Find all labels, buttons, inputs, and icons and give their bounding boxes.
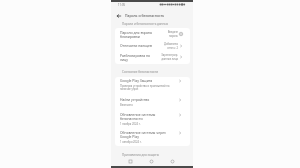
staticText: Зарегистрир. данные лица [161, 53, 178, 61]
staticText: Найти устройство [120, 97, 150, 102]
staticText: 1 ноября 2024 г. [120, 122, 141, 126]
staticText: Разблокировка по лицу [120, 53, 150, 62]
button[interactable]: Google Play Защита [115, 77, 190, 94]
button[interactable]: Назад [114, 11, 123, 20]
button[interactable]: Пароли для экрана блокировки [115, 28, 190, 40]
staticText: Добавлено отпеч.: 2 [164, 42, 178, 50]
staticText: Google Play Защита [120, 78, 153, 83]
button[interactable]: Главный экран [147, 157, 155, 165]
staticText: Отпечатки пальцев [120, 43, 152, 48]
staticText: Приложения для защиты [122, 153, 159, 157]
staticText: Состояние безопасности [122, 70, 159, 74]
button[interactable]: Недавние [126, 157, 134, 165]
staticText: Пароль и безопасность [125, 13, 165, 18]
button[interactable]: Найти устройство [115, 94, 190, 111]
staticText: Введите пароль [167, 30, 178, 38]
staticText: Пароли и безопасность данных [122, 22, 169, 26]
staticText: Включено [120, 103, 133, 107]
button[interactable]: Обновление системы безопасности [115, 111, 190, 128]
staticText: 1 октября 2024 г. [120, 140, 142, 144]
button[interactable]: Назад [168, 157, 176, 165]
button[interactable]: Отпечатки пальцев [115, 40, 190, 51]
staticText: Пароли для экрана блокировки [120, 30, 152, 39]
button[interactable]: Разблокировка по лицу [115, 51, 190, 63]
staticText: Обновление системы через Google Play [120, 130, 166, 139]
button[interactable]: Обновление системы через Google Play [115, 128, 190, 145]
staticText: 11:05 [118, 3, 126, 7]
staticText: Обновление системы безопасности [120, 112, 156, 121]
staticText: Проверка устройства и приложений на нали… [120, 84, 170, 90]
